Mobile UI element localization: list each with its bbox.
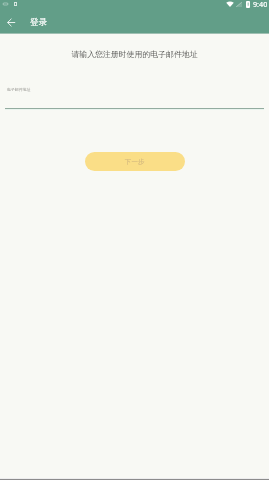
staticText: 下一步 (125, 158, 145, 166)
button[interactable]: Back (3, 14, 19, 30)
button[interactable]: 电子邮件地址 (0, 81, 269, 110)
staticText: 请输入您注册时使用的电子邮件地址 (0, 49, 269, 59)
button[interactable]: 下一步 (85, 152, 185, 171)
staticText: 9:40 (253, 0, 268, 9)
staticText: 电子邮件地址 (7, 87, 31, 92)
staticText: 登录 (30, 17, 47, 28)
